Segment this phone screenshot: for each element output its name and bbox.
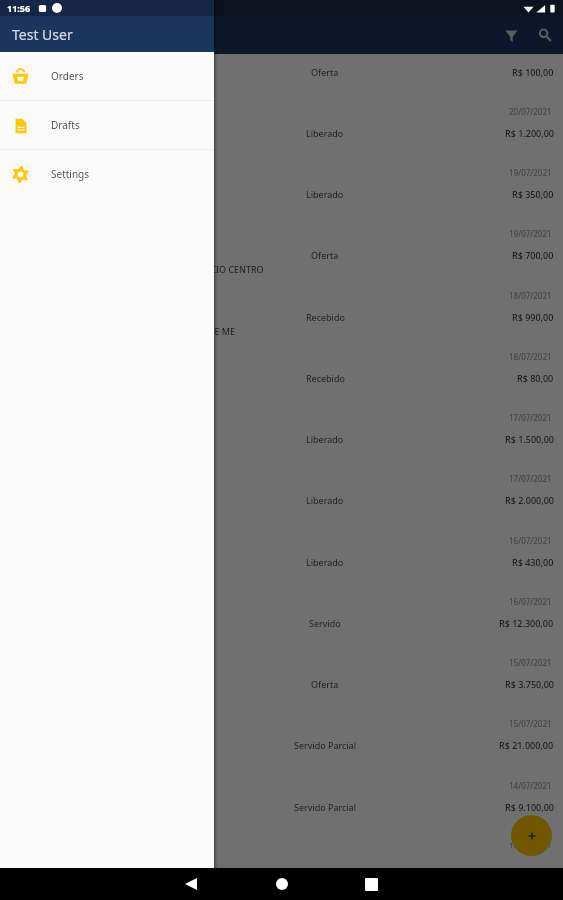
staticText: Liberado bbox=[306, 188, 344, 200]
button[interactable]: 16/07/2021 bbox=[0, 585, 563, 646]
staticText: 19/07/2021 bbox=[509, 228, 552, 239]
staticText: R$ 1.500,00 bbox=[505, 433, 554, 445]
button[interactable]: Home bbox=[276, 878, 288, 890]
button[interactable]: 16/07/2021 bbox=[0, 524, 563, 585]
button[interactable]: Filter bbox=[494, 18, 528, 52]
staticText: 14/07/2021 bbox=[509, 780, 552, 791]
button[interactable]: 14/07/2021 bbox=[0, 769, 563, 830]
button[interactable]: Search bbox=[528, 18, 562, 52]
staticText: Recebido bbox=[306, 311, 345, 323]
staticText: R$ 9.100,00 bbox=[505, 801, 554, 813]
button[interactable]: 17/07/2021 bbox=[0, 462, 563, 524]
staticText: Servido Parcial bbox=[294, 739, 356, 751]
staticText: R$ 700,00 bbox=[512, 249, 554, 261]
staticText: Liberado bbox=[306, 556, 344, 568]
button[interactable]: Add bbox=[511, 815, 552, 856]
button[interactable]: Orders bbox=[0, 52, 214, 100]
staticText: Test User bbox=[12, 25, 73, 44]
staticText: 18/07/2021 bbox=[509, 290, 552, 301]
staticText: Servido bbox=[309, 617, 341, 629]
staticText: R$ 430,00 bbox=[512, 556, 554, 568]
staticText: R$ 21.000,00 bbox=[499, 739, 554, 751]
staticText: 15/07/2021 bbox=[509, 718, 552, 729]
button[interactable]: 20/07/2021 bbox=[0, 95, 563, 156]
button[interactable]: 18/07/2021 bbox=[0, 340, 563, 401]
staticText: R$ 1.200,00 bbox=[505, 127, 554, 139]
button[interactable]: 19/07/2021 bbox=[0, 217, 563, 279]
staticText: COMERCIO CENTRO bbox=[179, 263, 264, 275]
staticText: R$ 12.300,00 bbox=[499, 617, 554, 629]
staticText: R$ 350,00 bbox=[512, 188, 554, 200]
staticText: R$ 3.750,00 bbox=[505, 678, 554, 690]
staticText: R$ 2.000,00 bbox=[505, 494, 554, 506]
staticText: 15/07/2021 bbox=[509, 657, 552, 668]
staticText: R$ 100,00 bbox=[512, 66, 554, 78]
button[interactable]: 14/07/2021 bbox=[0, 830, 563, 848]
staticText: 19/07/2021 bbox=[509, 167, 552, 178]
staticText: Servido Parcial bbox=[294, 801, 356, 813]
staticText: 14/07/2021 bbox=[509, 841, 552, 848]
button[interactable]: 17/07/2021 bbox=[0, 401, 563, 462]
button[interactable]: 20/07/2021 bbox=[0, 54, 563, 95]
staticText: JOSE ME bbox=[200, 325, 235, 337]
button[interactable]: 19/07/2021 bbox=[0, 156, 563, 217]
staticText: Liberado bbox=[306, 433, 344, 445]
button[interactable]: 15/07/2021 bbox=[0, 707, 563, 769]
staticText: 11:56 bbox=[7, 2, 31, 14]
staticText: Oferta bbox=[311, 249, 339, 261]
button[interactable]: Recents bbox=[365, 878, 378, 891]
staticText: Liberado bbox=[306, 127, 344, 139]
staticText: Settings bbox=[51, 167, 90, 181]
button[interactable]: 15/07/2021 bbox=[0, 646, 563, 707]
staticText: 16/07/2021 bbox=[509, 596, 552, 607]
staticText: 20/07/2021 bbox=[509, 106, 552, 117]
staticText: Orders bbox=[51, 69, 84, 83]
staticText: Oferta bbox=[311, 678, 339, 690]
button[interactable]: Back bbox=[184, 877, 198, 891]
button[interactable]: Drafts bbox=[0, 101, 214, 149]
staticText: 17/07/2021 bbox=[509, 412, 552, 423]
staticText: 16/07/2021 bbox=[509, 535, 552, 546]
button[interactable]: 18/07/2021 bbox=[0, 279, 563, 340]
staticText: Drafts bbox=[51, 118, 80, 132]
staticText: Recebido bbox=[306, 372, 345, 384]
staticText: Oferta bbox=[311, 66, 339, 78]
staticText: R$ 80,00 bbox=[517, 372, 554, 384]
staticText: R$ 990,00 bbox=[512, 311, 554, 323]
staticText: 18/07/2021 bbox=[509, 351, 552, 362]
button[interactable]: Settings bbox=[0, 150, 214, 198]
staticText: Liberado bbox=[306, 494, 344, 506]
staticText: 17/07/2021 bbox=[509, 473, 552, 484]
